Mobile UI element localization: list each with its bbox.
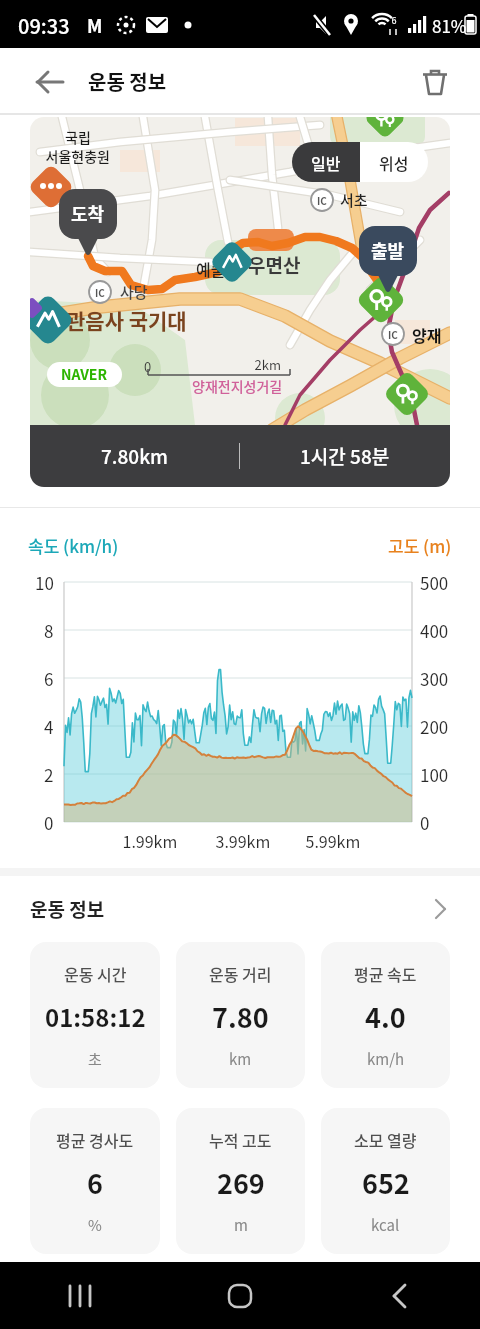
button[interactable]: 일반 bbox=[30, 117, 450, 487]
staticText: 운동 정보 bbox=[30, 895, 105, 923]
staticText: 1시간 58분 bbox=[300, 442, 390, 470]
staticText: 평균 경사도 bbox=[56, 1128, 134, 1151]
staticText: km bbox=[229, 1048, 252, 1070]
button[interactable]: 소모 열량 bbox=[321, 1108, 450, 1254]
button[interactable]: 운동 거리 bbox=[176, 942, 305, 1088]
button[interactable]: 일반 bbox=[292, 142, 360, 182]
staticText: 운동 시간 bbox=[64, 962, 127, 985]
staticText: % bbox=[88, 1214, 102, 1236]
button[interactable] bbox=[405, 48, 465, 115]
staticText: 평균 속도 bbox=[354, 962, 417, 985]
button[interactable]: 평균 속도 bbox=[321, 942, 450, 1088]
staticText: 초 bbox=[88, 1048, 102, 1070]
button[interactable] bbox=[20, 48, 80, 115]
button[interactable] bbox=[0, 1262, 160, 1329]
staticText: kcal bbox=[371, 1214, 400, 1236]
staticText: 4.0 bbox=[365, 997, 406, 1036]
button[interactable] bbox=[160, 1262, 320, 1329]
staticText: 7.80 bbox=[212, 997, 269, 1036]
staticText: 운동 거리 bbox=[209, 962, 272, 985]
staticText: 위성 bbox=[379, 151, 409, 174]
staticText: 운동 정보 bbox=[88, 67, 167, 96]
button[interactable]: 누적 고도 bbox=[176, 1108, 305, 1254]
staticText: 누적 고도 bbox=[209, 1128, 272, 1151]
button[interactable]: 운동 정보 bbox=[0, 876, 480, 942]
staticText: 7.80km bbox=[101, 442, 168, 470]
staticText: 6 bbox=[87, 1163, 103, 1202]
button[interactable]: 운동 시간 bbox=[30, 942, 160, 1088]
staticText: m bbox=[234, 1214, 248, 1236]
staticText: 일반 bbox=[311, 151, 341, 174]
staticText: km/h bbox=[367, 1048, 405, 1070]
staticText: 652 bbox=[362, 1163, 410, 1202]
button[interactable]: 평균 경사도 bbox=[30, 1108, 160, 1254]
button[interactable]: 위성 bbox=[360, 142, 428, 182]
staticText: 소모 열량 bbox=[354, 1128, 417, 1151]
staticText: 269 bbox=[217, 1163, 265, 1202]
staticText: 01:58:12 bbox=[45, 999, 146, 1034]
button[interactable] bbox=[320, 1262, 480, 1329]
